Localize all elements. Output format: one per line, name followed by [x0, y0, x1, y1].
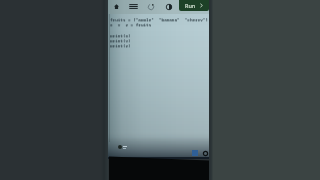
staticText: x, y, z = fruits	[110, 21, 152, 26]
staticText: fruits = ["apple", "banana", "cherry"]	[110, 16, 208, 21]
button[interactable]: Home	[110, 0, 123, 13]
staticText: print(y)	[110, 37, 131, 42]
button[interactable]: Reset	[144, 0, 157, 13]
staticText: x, y, z = fruits	[110, 22, 152, 27]
staticText: print(y)	[110, 37, 131, 42]
staticText: print(z)	[110, 43, 131, 48]
staticText: print(x)	[110, 32, 131, 37]
staticText: print(x)	[110, 32, 131, 37]
staticText: x, y, z = fruits	[110, 21, 152, 26]
button[interactable]: Theme	[162, 0, 175, 13]
staticText: print(z)	[110, 42, 131, 47]
staticText: fruits = ["apple", "banana", "cherry"]	[110, 16, 208, 21]
button[interactable]: Search	[203, 151, 208, 156]
staticText: print(z)	[110, 42, 131, 47]
staticText: fruits = ["apple", "banana", "cherry"]	[110, 17, 208, 22]
button[interactable]: Menu	[127, 0, 140, 13]
button[interactable]: Profile	[118, 145, 122, 149]
button[interactable]: Run	[179, 0, 209, 11]
staticText: print(y)	[110, 38, 131, 43]
staticText: Run	[185, 2, 196, 9]
staticText: print(x)	[110, 33, 131, 38]
